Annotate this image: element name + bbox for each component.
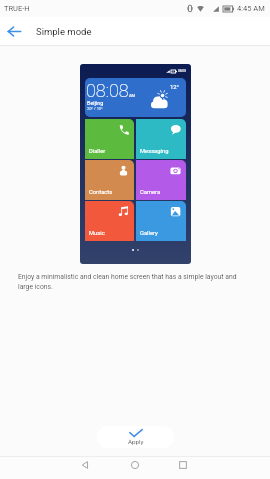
- staticText: AM: [129, 93, 136, 98]
- staticText: Music: [89, 230, 105, 237]
- staticText: Enjoy a minimalistic and clean home scre…: [18, 273, 242, 291]
- staticText: 4:45 AM: [237, 4, 265, 13]
- staticText: 12°: [170, 83, 179, 90]
- button[interactable]: Music: [85, 201, 134, 241]
- button[interactable]: Back: [0, 17, 28, 45]
- staticText: 08:08: [178, 69, 186, 73]
- button[interactable]: Apply: [97, 426, 174, 448]
- staticText: Simple mode: [36, 26, 92, 37]
- button[interactable]: Messaging: [136, 119, 186, 159]
- button[interactable]: Back: [71, 454, 99, 476]
- staticText: 08:08: [86, 80, 129, 101]
- button[interactable]: Recents: [169, 454, 197, 476]
- staticText: Beijing: [87, 100, 104, 106]
- button[interactable]: Dialler: [85, 119, 134, 159]
- staticText: 20° / 10°: [87, 106, 103, 111]
- staticText: Dialler: [89, 148, 106, 155]
- button[interactable]: Gallery: [136, 201, 186, 241]
- button[interactable]: Camera: [136, 160, 186, 200]
- staticText: Messaging: [140, 148, 169, 155]
- staticText: Gallery: [140, 230, 158, 237]
- staticText: Contacts: [89, 189, 113, 196]
- staticText: Camera: [140, 189, 161, 196]
- button[interactable]: Home: [121, 454, 149, 476]
- staticText: TRUE-H: [4, 4, 30, 13]
- staticText: Apply: [128, 438, 144, 445]
- button[interactable]: Contacts: [85, 160, 134, 200]
